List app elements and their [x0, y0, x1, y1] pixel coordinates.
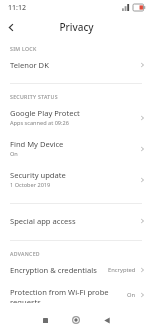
staticText: Find My Device	[10, 139, 64, 149]
staticText: Telenor DK	[10, 60, 49, 70]
button[interactable]: Home	[64, 309, 88, 331]
staticText: Encrypted	[108, 266, 136, 274]
staticText: Encryption & credentials	[10, 265, 97, 275]
staticText: SECURITY STATUS	[10, 93, 58, 100]
staticText: Security update	[10, 170, 66, 180]
button[interactable]: Telenor DK	[0, 54, 152, 76]
staticText: ADVANCED	[10, 250, 40, 257]
button[interactable]: Protection from Wi-Fi probe requests	[0, 281, 152, 309]
button[interactable]: Encryption & credentials	[0, 259, 152, 281]
button[interactable]: Find My Device	[0, 133, 152, 164]
staticText: Protection from Wi-Fi probe requests	[10, 287, 127, 303]
button[interactable]: Security update	[0, 164, 152, 195]
button[interactable]: Special app access	[0, 210, 152, 232]
button[interactable]: Recents	[33, 309, 57, 331]
staticText: Apps scanned at 09:26	[10, 119, 69, 127]
staticText: Privacy	[59, 20, 94, 34]
button[interactable]: Back	[0, 16, 22, 38]
staticText: 11:12	[8, 3, 26, 13]
button[interactable]: Back	[95, 309, 119, 331]
staticText: Google Play Protect	[10, 108, 80, 118]
button[interactable]: Google Play Protect	[0, 102, 152, 133]
staticText: SIM LOCK	[10, 45, 37, 52]
staticText: Special app access	[10, 216, 76, 226]
staticText: On	[127, 291, 136, 299]
staticText: On	[10, 150, 18, 158]
staticText: 1 October 2019	[10, 181, 51, 189]
